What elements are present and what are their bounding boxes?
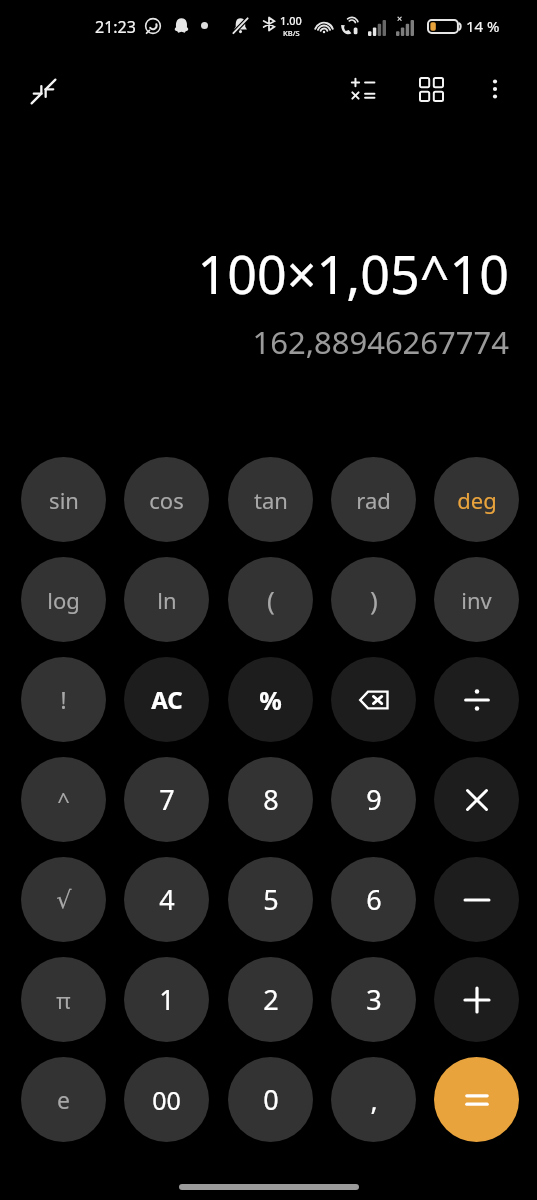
staticText: rad — [356, 485, 391, 515]
staticText: 2 — [263, 981, 279, 1018]
staticText: 8 — [263, 781, 279, 818]
staticText: cos — [149, 485, 184, 515]
staticText: KB/S — [283, 28, 300, 38]
button[interactable]: tan — [228, 457, 313, 542]
staticText: sin — [49, 485, 79, 515]
button[interactable]: 2 — [228, 957, 313, 1042]
button[interactable]: , — [331, 1057, 416, 1142]
button[interactable]: 7 — [124, 757, 209, 842]
staticText: ! — [60, 683, 67, 716]
button[interactable]: 9 — [331, 757, 416, 842]
button[interactable]: Collapse — [14, 62, 72, 120]
button[interactable]: ln — [124, 557, 209, 642]
staticText: 3 — [366, 981, 382, 1018]
button[interactable]: e — [21, 1057, 106, 1142]
staticText: 7 — [159, 781, 175, 818]
staticText: AC — [151, 683, 183, 716]
staticText: ^ — [57, 785, 70, 815]
button[interactable]: AC — [124, 657, 209, 742]
button[interactable]: rad — [331, 457, 416, 542]
staticText: 6 — [366, 881, 382, 918]
button[interactable]: 1 — [124, 957, 209, 1042]
button[interactable]: More options — [468, 62, 522, 116]
staticText: 1 — [159, 981, 175, 1018]
button[interactable]: 0 — [228, 1057, 313, 1142]
staticText: deg — [457, 485, 497, 515]
button[interactable]: 00 — [124, 1057, 209, 1142]
button[interactable]: 3 — [331, 957, 416, 1042]
button[interactable]: Multiply — [434, 757, 519, 842]
staticText: log — [47, 585, 80, 615]
button[interactable]: Add — [434, 957, 519, 1042]
button[interactable]: cos — [124, 457, 209, 542]
staticText: ) — [370, 582, 378, 617]
staticText: ( — [267, 582, 275, 617]
button[interactable]: deg — [434, 457, 519, 542]
button[interactable]: Backspace — [331, 657, 416, 742]
staticText: π — [56, 985, 71, 1015]
staticText: 4 — [159, 881, 175, 918]
button[interactable]: ! — [21, 657, 106, 742]
staticText: inv — [461, 585, 492, 615]
button[interactable]: Keypad layout — [404, 62, 458, 116]
button[interactable]: π — [21, 957, 106, 1042]
staticText: , — [370, 1081, 378, 1118]
button[interactable]: ) — [331, 557, 416, 642]
staticText: ln — [157, 585, 177, 615]
staticText: 14 % — [466, 16, 500, 36]
staticText: 1.00 — [280, 13, 302, 28]
button[interactable]: 5 — [228, 857, 313, 942]
staticText: 00 — [152, 1083, 181, 1117]
staticText: 0 — [263, 1081, 279, 1118]
button[interactable]: inv — [434, 557, 519, 642]
button[interactable]: Equals — [434, 1057, 519, 1142]
button[interactable]: log — [21, 557, 106, 642]
button[interactable]: Subtract — [434, 857, 519, 942]
button[interactable]: sin — [21, 457, 106, 542]
button[interactable]: 6 — [331, 857, 416, 942]
staticText: tan — [254, 485, 288, 515]
staticText: × — [397, 12, 403, 24]
staticText: 9 — [366, 781, 382, 818]
button[interactable]: ^ — [21, 757, 106, 842]
button[interactable]: % — [228, 657, 313, 742]
staticText: 100×1,05^10 — [197, 238, 509, 309]
staticText: 5 — [263, 881, 279, 918]
button[interactable]: √ — [21, 857, 106, 942]
button[interactable]: 8 — [228, 757, 313, 842]
button[interactable]: Divide — [434, 657, 519, 742]
staticText: √ — [56, 886, 72, 914]
button[interactable]: Scientific — [336, 62, 390, 116]
staticText: % — [259, 683, 282, 717]
button[interactable]: ( — [228, 557, 313, 642]
button[interactable]: 4 — [124, 857, 209, 942]
staticText: 162,88946267774 — [252, 321, 509, 363]
staticText: e — [57, 1084, 70, 1115]
staticText: 21:23 — [95, 16, 136, 38]
